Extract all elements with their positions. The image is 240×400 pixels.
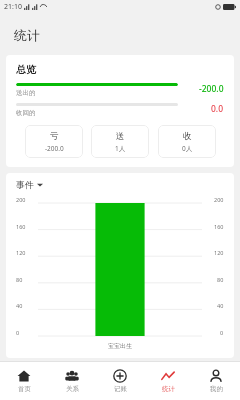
staticText: 120 xyxy=(214,249,224,256)
button[interactable]: 统计 xyxy=(144,362,192,400)
other: 关系 xyxy=(65,369,79,383)
staticText: 0人 xyxy=(182,144,193,153)
staticText: 统计 xyxy=(14,27,40,43)
staticText: 收回的 xyxy=(16,109,36,117)
staticText: 首页 xyxy=(18,385,31,393)
staticText: 送 xyxy=(116,131,125,142)
button[interactable]: 亏 xyxy=(25,125,83,158)
button[interactable]: 关系 xyxy=(48,362,96,400)
other: 首页 xyxy=(17,369,31,383)
staticText: 200 xyxy=(16,196,26,203)
staticText: 80 xyxy=(16,276,23,283)
button[interactable]: 收 xyxy=(158,125,216,158)
staticText: 送出的 xyxy=(16,89,36,97)
staticText: 120 xyxy=(16,249,26,256)
staticText: 关系 xyxy=(66,385,79,393)
other: 统计 xyxy=(161,369,175,383)
staticText: 0.0 xyxy=(211,103,224,115)
staticText: 记账 xyxy=(114,385,127,393)
staticText: 40 xyxy=(217,302,224,309)
button[interactable]: 首页 xyxy=(0,362,48,400)
staticText: -200.0 xyxy=(199,83,224,95)
staticText: 1人 xyxy=(115,144,126,153)
button[interactable]: 送 xyxy=(91,125,149,158)
staticText: 80 xyxy=(217,276,224,283)
staticText: 160 xyxy=(16,223,26,230)
button[interactable]: 事件 xyxy=(16,179,43,190)
staticText: 0 xyxy=(16,329,20,336)
button[interactable]: 我的 xyxy=(192,362,240,400)
staticText: 事件 xyxy=(16,179,34,190)
staticText: 宝宝出生 xyxy=(108,342,132,350)
staticText: 统计 xyxy=(162,385,175,393)
staticText: 21:10 xyxy=(4,2,22,12)
button[interactable]: 记账 xyxy=(96,362,144,400)
other: 我的 xyxy=(209,369,223,383)
staticText: -200.0 xyxy=(45,144,64,153)
staticText: 200 xyxy=(214,196,224,203)
staticText: 亏 xyxy=(50,131,59,142)
staticText: 我的 xyxy=(210,385,223,393)
staticText: 160 xyxy=(214,223,224,230)
staticText: 收 xyxy=(183,131,192,142)
other: 记账 xyxy=(113,369,127,383)
staticText: 总览 xyxy=(16,63,36,76)
staticText: 40 xyxy=(16,302,23,309)
staticText: 0 xyxy=(220,329,224,336)
